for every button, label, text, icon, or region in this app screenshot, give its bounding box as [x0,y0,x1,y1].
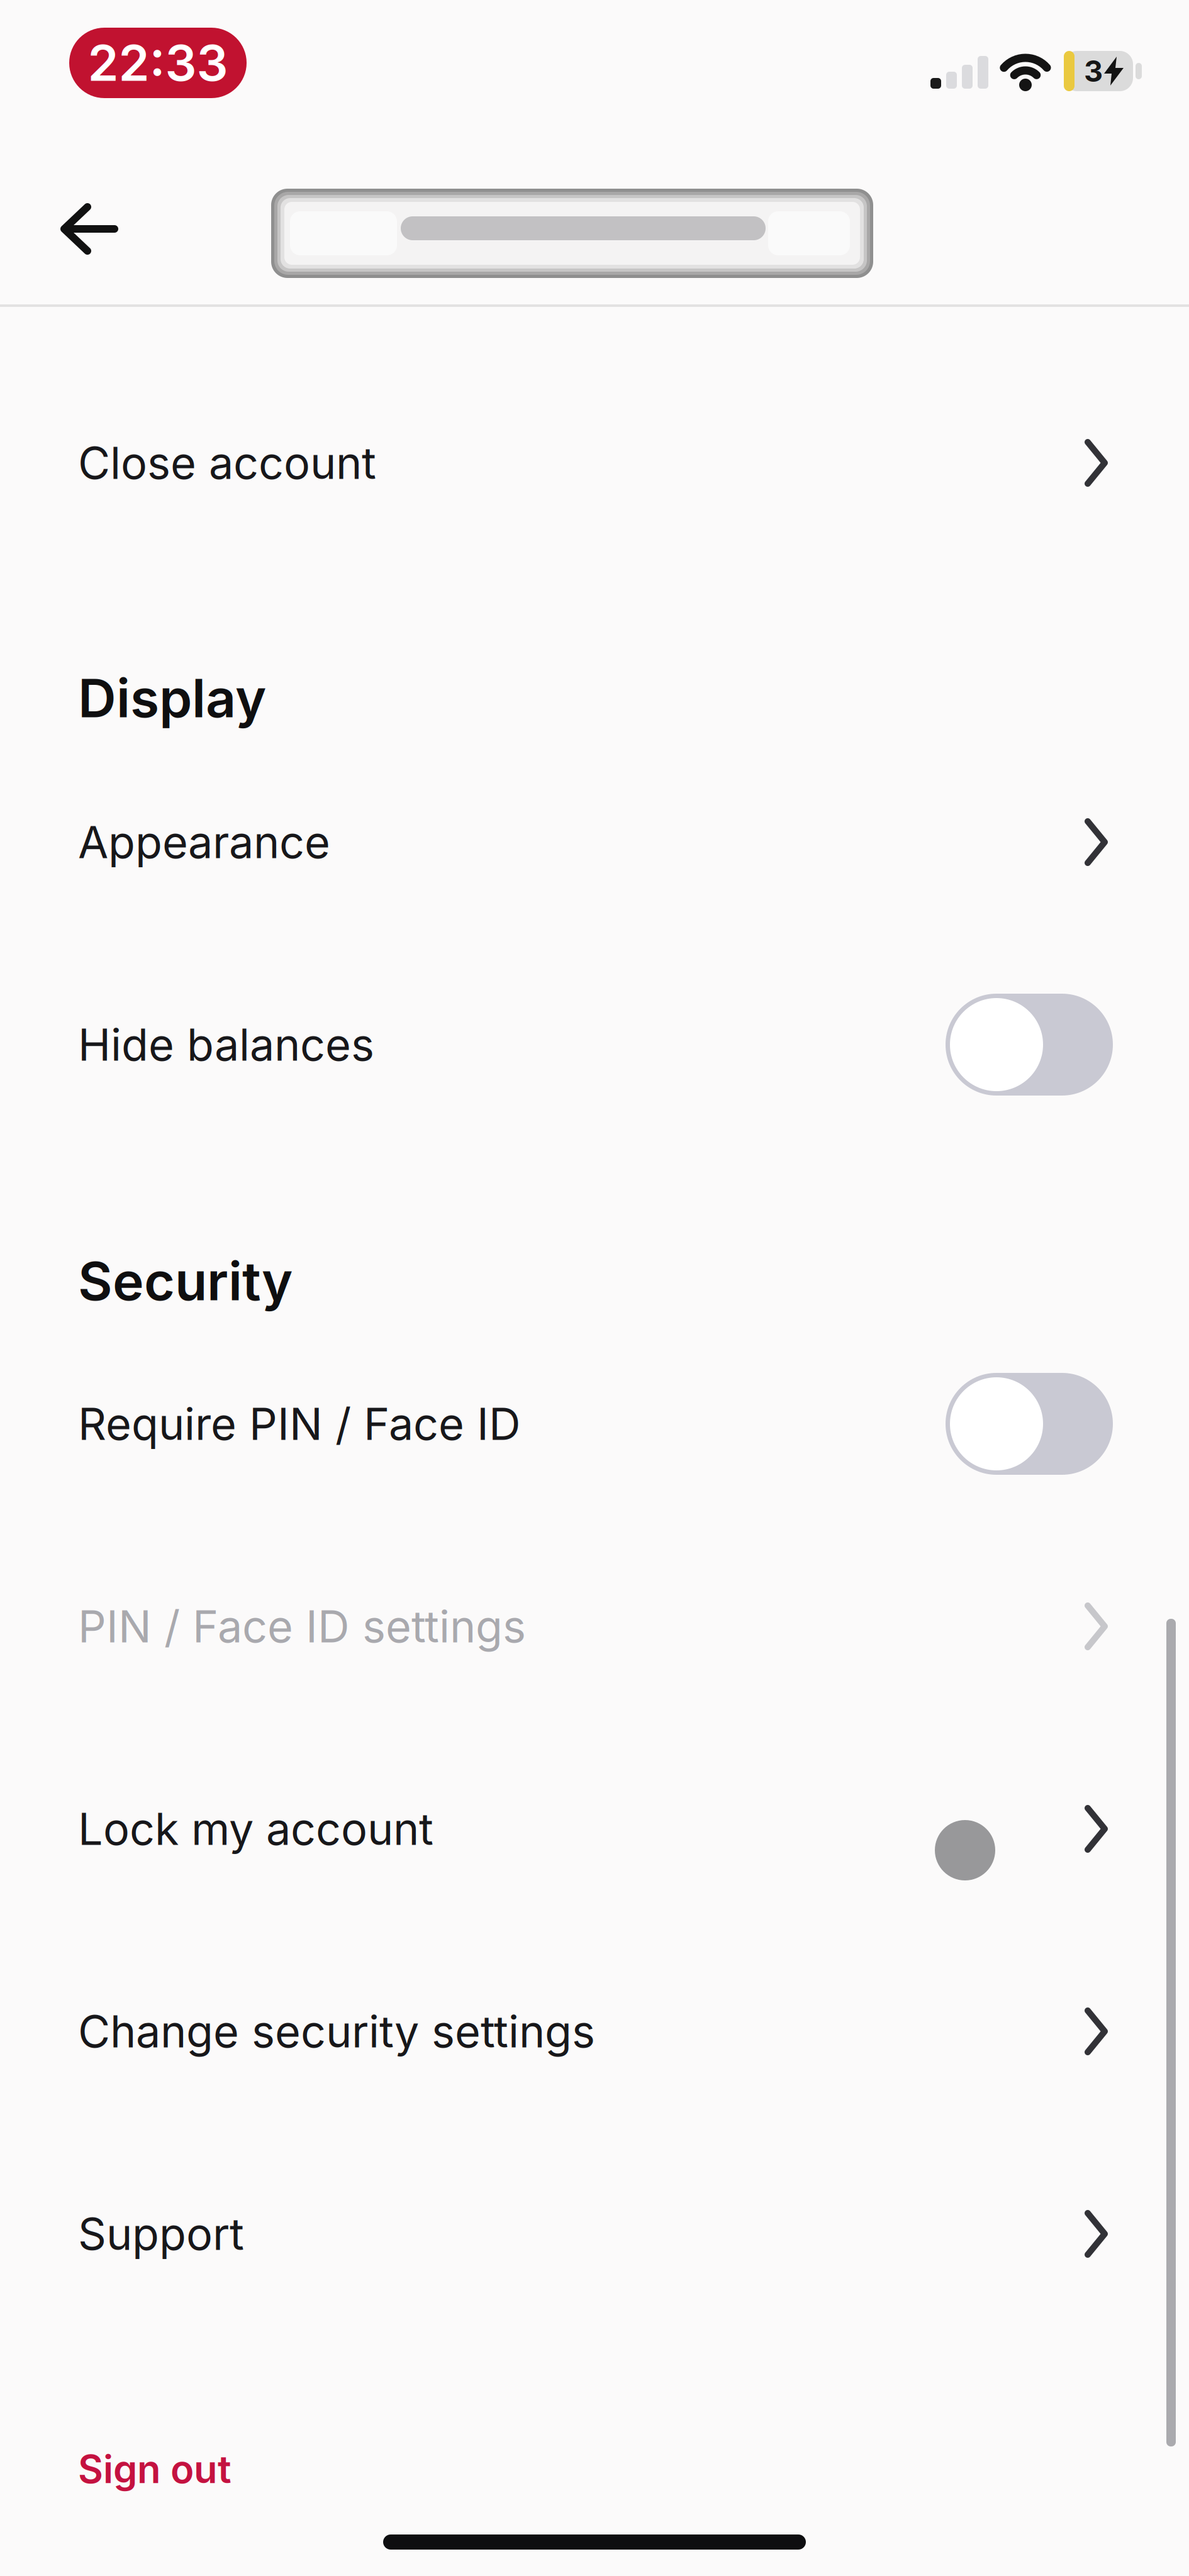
button[interactable]: Support [0,2133,1189,2335]
staticText: Change security settings [78,2005,595,2058]
staticText: Sign out [78,2446,232,2492]
button[interactable]: Lock my account [0,1728,1189,1930]
staticText: 3 [1084,53,1103,89]
button[interactable]: Change security settings [0,1930,1189,2133]
staticText: Hide balances [78,1018,374,1071]
button[interactable] [60,204,118,253]
staticText: Support [78,2207,244,2261]
button[interactable]: Appearance [0,741,1189,943]
staticText: Lock my account [78,1802,433,1856]
staticText: PIN / Face ID settings [78,1600,526,1653]
button[interactable]: PIN / Face ID settings [0,1525,1189,1728]
button[interactable]: Sign out [0,2368,1189,2570]
button[interactable]: Require PIN / Face ID [0,1323,1189,1525]
staticText: 22:33 [88,33,228,93]
button[interactable]: Close account [0,362,1189,564]
staticText: Require PIN / Face ID [78,1397,521,1451]
staticText: Close account [78,436,376,490]
staticText: Appearance [78,816,330,869]
staticText: Display [78,666,266,730]
staticText: Security [78,1249,293,1313]
button[interactable]: Hide balances [0,943,1189,1146]
